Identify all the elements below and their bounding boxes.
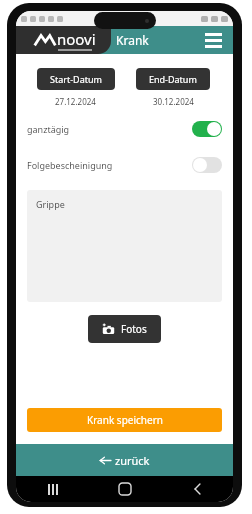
staticText: 27.12.2024 (55, 96, 96, 107)
staticText: ganztägig (27, 123, 70, 135)
button[interactable]: Folgebescheinigung (27, 157, 222, 173)
staticText: zurück (115, 453, 150, 468)
button[interactable]: Start-Datum (37, 68, 115, 90)
other: Foto hinzufügen (102, 323, 115, 336)
button[interactable]: Foto hinzufügen (88, 315, 161, 343)
button[interactable]: noovi Logo (16, 26, 111, 54)
staticText: Start-Datum (50, 73, 102, 85)
staticText: noovi (57, 29, 96, 49)
button[interactable]: End-Datum (136, 68, 210, 90)
button[interactable]: Letzte Apps (16, 476, 89, 502)
button[interactable]: ganztägig (27, 121, 222, 137)
staticText: End-Datum (149, 73, 197, 85)
staticText: Grippe (36, 198, 65, 210)
staticText: Fotos (121, 322, 147, 336)
button[interactable]: Grippe (27, 190, 222, 302)
button[interactable]: Startbildschirm (89, 476, 161, 502)
staticText: Folgebescheinigung (27, 159, 113, 171)
button[interactable]: Krank speichern (27, 408, 222, 432)
staticText: Krank (116, 32, 149, 48)
button[interactable]: zurück (16, 444, 233, 476)
button[interactable]: Menü (203, 31, 224, 50)
staticText: Krank speichern (87, 413, 163, 427)
staticText: 30.12.2024 (153, 96, 194, 107)
button[interactable]: Zurück (161, 476, 233, 502)
